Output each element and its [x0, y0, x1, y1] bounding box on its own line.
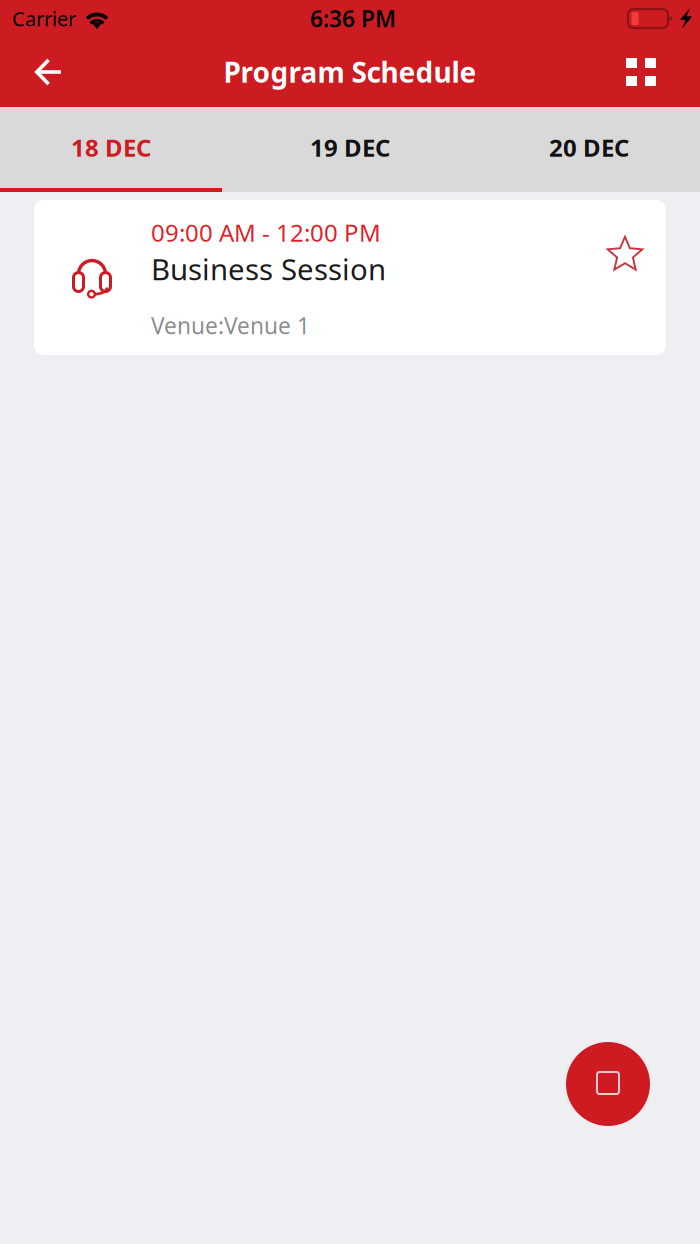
staticText: Program Schedule: [223, 53, 476, 91]
staticText: 19 DEC: [310, 132, 390, 163]
button[interactable]: Add: [566, 1042, 650, 1126]
staticText: 09:00 AM - 12:00 PM: [151, 216, 381, 248]
button[interactable]: 19 DEC: [222, 107, 478, 192]
staticText: Business Session: [151, 249, 386, 288]
staticText: 20 DEC: [549, 132, 629, 163]
button[interactable]: Grid view: [605, 37, 677, 107]
staticText: 6:36 PM: [310, 3, 396, 33]
staticText: Venue:Venue 1: [151, 310, 310, 340]
staticText: 18 DEC: [71, 132, 151, 163]
staticText: Carrier: [12, 5, 76, 32]
button[interactable]: 20 DEC: [478, 107, 700, 192]
button[interactable]: Back: [13, 37, 85, 107]
button[interactable]: 18 DEC: [0, 107, 222, 192]
button[interactable]: 09:00 AM - 12:00 PM: [34, 200, 666, 355]
